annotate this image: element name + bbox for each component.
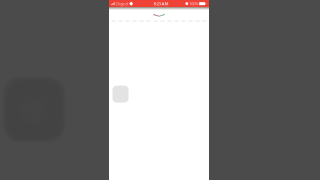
- staticText: 8:23 AM: [154, 1, 169, 6]
- staticText: Digicel: [116, 1, 128, 6]
- button[interactable]: Image: [112, 86, 128, 103]
- staticText: 100%: [189, 1, 198, 6]
- button[interactable]: Home: [153, 14, 165, 17]
